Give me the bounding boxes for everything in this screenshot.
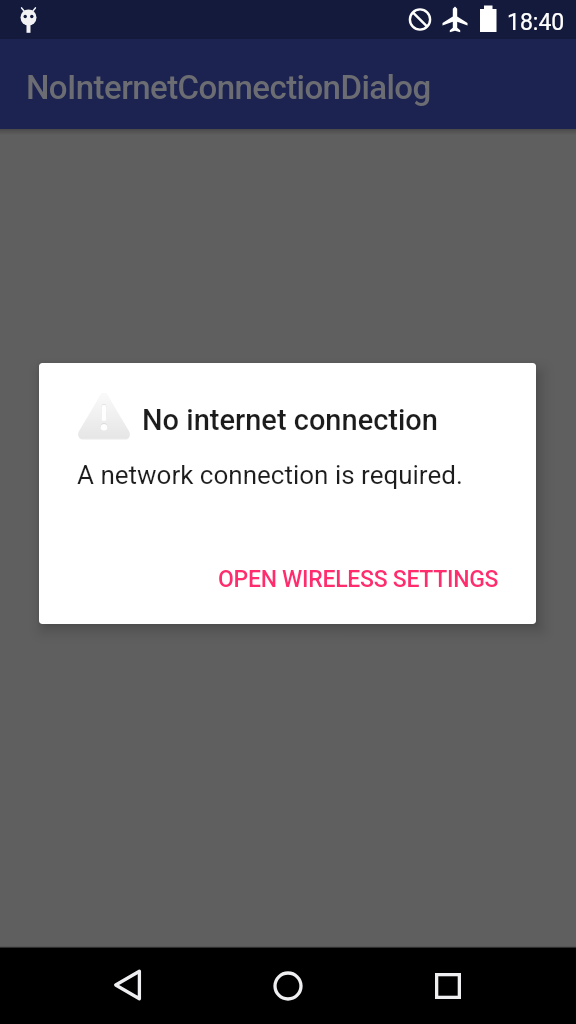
button[interactable]: Back — [88, 946, 168, 1023]
staticText: NoInternetConnectionDialog — [26, 68, 431, 107]
button[interactable]: Home — [248, 947, 328, 1024]
staticText: OPEN WIRELESS SETTINGS — [218, 566, 499, 593]
staticText: A network connection is required. — [77, 460, 463, 490]
button[interactable]: OPEN WIRELESS SETTINGS — [202, 554, 515, 605]
button[interactable]: Recent apps — [408, 947, 488, 1024]
staticText: 18:40 — [507, 9, 565, 36]
staticText: No internet connection — [142, 403, 438, 437]
